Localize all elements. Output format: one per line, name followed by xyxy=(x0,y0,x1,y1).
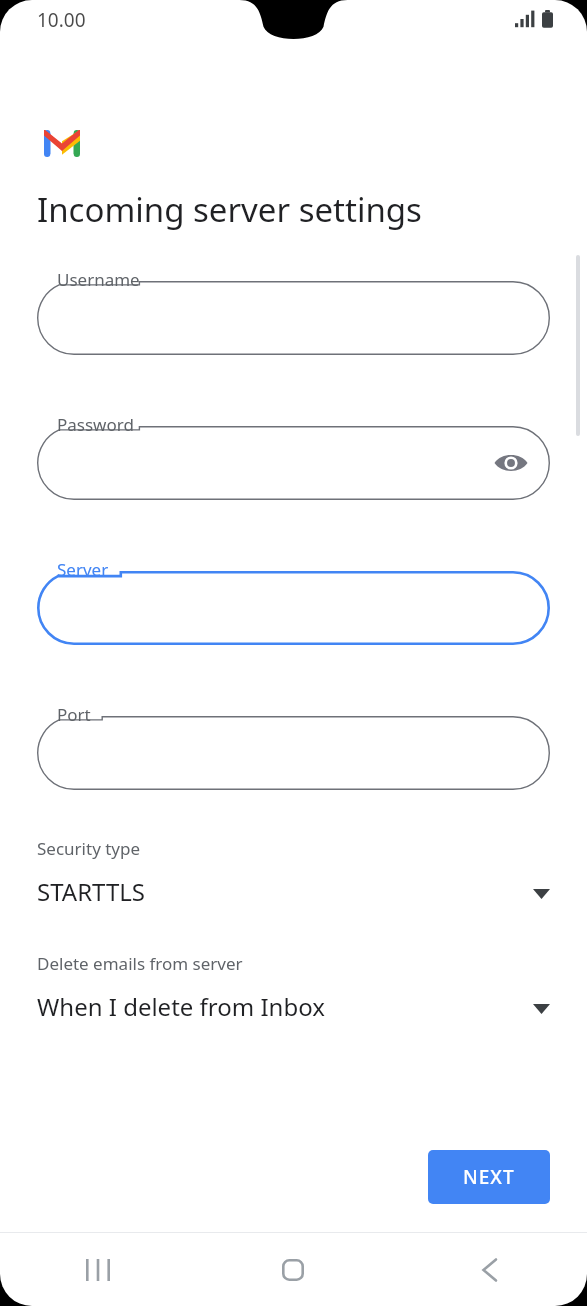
button[interactable]: Home xyxy=(195,1233,391,1306)
staticText: Security type xyxy=(37,837,141,860)
staticText: 10.00 xyxy=(37,7,86,33)
staticText: Server xyxy=(57,558,109,581)
button[interactable]: Recent apps xyxy=(0,1233,195,1306)
staticText: STARTTLS xyxy=(37,875,146,908)
button[interactable]: Security type xyxy=(0,837,587,908)
button[interactable]: Port xyxy=(37,700,550,790)
staticText: Incoming server settings xyxy=(37,187,422,232)
button[interactable]: Server xyxy=(37,555,550,645)
staticText: Port xyxy=(57,703,91,726)
button[interactable]: Password xyxy=(37,410,550,500)
button[interactable]: Back xyxy=(391,1233,587,1306)
staticText: Username xyxy=(57,268,140,291)
button[interactable]: Username xyxy=(37,265,550,355)
button[interactable]: NEXT xyxy=(428,1150,550,1204)
staticText: Delete emails from server xyxy=(37,952,243,975)
other: Gmail xyxy=(44,130,80,157)
staticText: When I delete from Inbox xyxy=(37,990,325,1023)
staticText: Password xyxy=(57,413,134,436)
staticText: NEXT xyxy=(463,1164,515,1190)
button[interactable]: Show password xyxy=(488,440,534,486)
button[interactable]: Delete emails from server xyxy=(0,952,587,1023)
